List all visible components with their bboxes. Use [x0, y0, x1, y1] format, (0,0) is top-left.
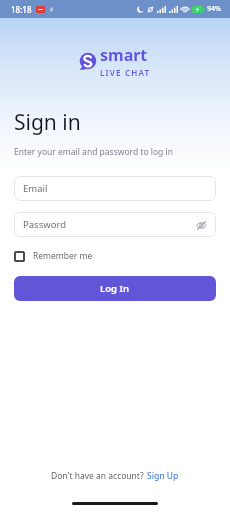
staticText: 94%: [207, 4, 221, 14]
staticText: Email: [23, 182, 48, 195]
staticText: Sign Up: [147, 470, 179, 482]
button[interactable]: Log In: [14, 276, 216, 301]
staticText: Sign in: [14, 108, 81, 137]
staticText: LIVE CHAT: [100, 67, 151, 78]
button[interactable]: Email: [14, 176, 216, 201]
staticText: Password: [23, 218, 66, 231]
staticText: 18:18: [11, 4, 32, 15]
staticText: Log In: [100, 282, 130, 295]
button[interactable]: Remember me: [14, 250, 93, 262]
staticText: smart: [100, 44, 148, 66]
staticText: Remember me: [33, 250, 93, 262]
button[interactable]: Show password: [194, 218, 208, 232]
staticText: Don't have an account?: [51, 470, 144, 482]
button[interactable]: Sign Up: [147, 470, 179, 482]
staticText: Enter your email and password to log in: [14, 146, 173, 158]
button[interactable]: Password: [14, 212, 216, 237]
